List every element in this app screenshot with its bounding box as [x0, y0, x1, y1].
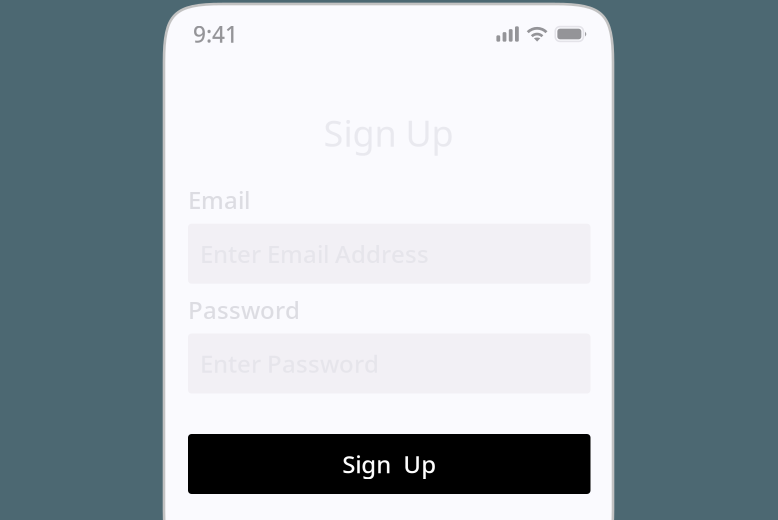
staticText: Password — [188, 294, 300, 326]
staticText: Enter Password — [200, 348, 379, 379]
staticText: Enter Email Address — [200, 238, 429, 270]
button[interactable]: Sign Up — [188, 434, 590, 494]
staticText: Email — [188, 184, 250, 216]
staticText: Sign Up — [342, 448, 436, 480]
staticText: 9:41 — [193, 19, 238, 49]
staticText: Sign Up — [323, 109, 453, 157]
